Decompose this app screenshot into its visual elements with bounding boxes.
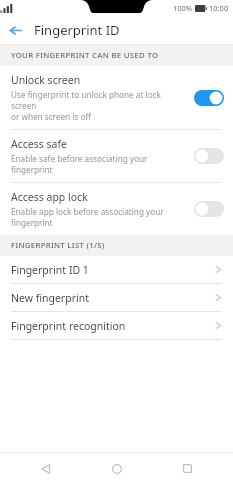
staticText: Enable safe before associating your fing… (11, 153, 148, 175)
staticText: Access safe (11, 137, 67, 151)
button[interactable]: Off (194, 148, 224, 164)
button[interactable]: Off (194, 201, 224, 217)
staticText: Fingerprint ID (34, 21, 120, 39)
button[interactable]: New fingerprint (0, 284, 233, 311)
button[interactable]: Fingerprint recognition (0, 312, 233, 339)
staticText: Unlock screen (11, 73, 81, 87)
staticText: New fingerprint (11, 291, 215, 305)
button[interactable]: Access safe (0, 130, 233, 182)
button[interactable]: Back (21, 453, 71, 484)
staticText: 100% (173, 3, 193, 13)
staticText: Enable app lock before associating your … (11, 206, 164, 228)
staticText: Access app lock (11, 190, 88, 204)
button[interactable]: Unlock screen (0, 66, 233, 129)
staticText: Use fingerprint to unlock phone at lock … (11, 89, 188, 122)
button[interactable]: Access app lock (0, 183, 233, 235)
staticText: Fingerprint ID 1 (11, 263, 215, 277)
staticText: Fingerprint recognition (11, 319, 215, 333)
button[interactable]: Fingerprint ID 1 (0, 256, 233, 283)
staticText: 10:00 (209, 3, 229, 13)
button[interactable]: Recents (162, 453, 212, 484)
button[interactable]: On (194, 90, 224, 106)
staticText: YOUR FINGERPRINT CAN BE USED TO (11, 50, 159, 61)
staticText: FINGERPRINT LIST (1/5) (11, 240, 105, 251)
button[interactable]: Home (92, 453, 142, 484)
button[interactable]: Back (0, 16, 30, 44)
